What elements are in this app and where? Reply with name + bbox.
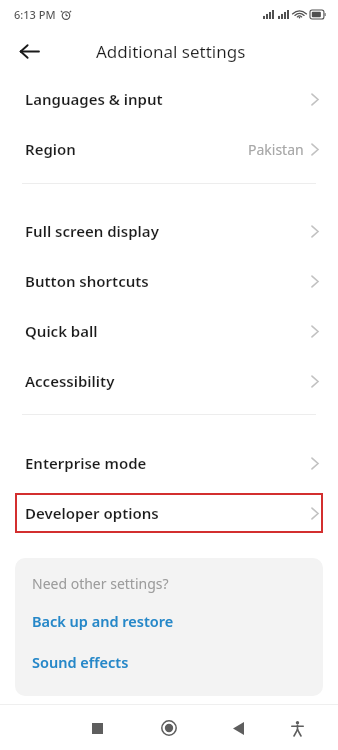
staticText: Sound effects: [32, 652, 129, 672]
staticText: Developer options: [25, 503, 159, 523]
button[interactable]: Home: [153, 712, 185, 744]
button[interactable]: Button shortcuts: [0, 256, 338, 306]
button[interactable]: Quick ball: [0, 306, 338, 356]
button[interactable]: Developer options: [15, 493, 323, 533]
button[interactable]: Back: [222, 712, 254, 744]
staticText: Back up and restore: [32, 611, 174, 631]
button[interactable]: Back: [12, 34, 46, 68]
button[interactable]: Recents: [81, 712, 113, 744]
button[interactable]: Languages & input: [0, 74, 338, 124]
staticText: Need other settings?: [32, 574, 169, 593]
staticText: Quick ball: [25, 321, 98, 341]
staticText: Button shortcuts: [25, 271, 149, 291]
button[interactable]: Accessibility: [281, 712, 313, 744]
button[interactable]: Accessibility: [0, 356, 338, 406]
staticText: Languages & input: [25, 89, 163, 109]
staticText: Region: [25, 139, 76, 159]
button[interactable]: Sound effects: [15, 648, 323, 676]
staticText: Enterprise mode: [25, 453, 147, 473]
button[interactable]: Back up and restore: [15, 607, 323, 635]
button[interactable]: Full screen display: [0, 206, 338, 256]
staticText: Accessibility: [25, 371, 115, 391]
staticText: Full screen display: [25, 221, 159, 241]
button[interactable]: Region: [0, 124, 338, 174]
staticText: Additional settings: [96, 40, 246, 63]
staticText: 6:13 PM: [14, 7, 56, 22]
staticText: Pakistan: [248, 140, 304, 159]
button[interactable]: Enterprise mode: [0, 438, 338, 488]
